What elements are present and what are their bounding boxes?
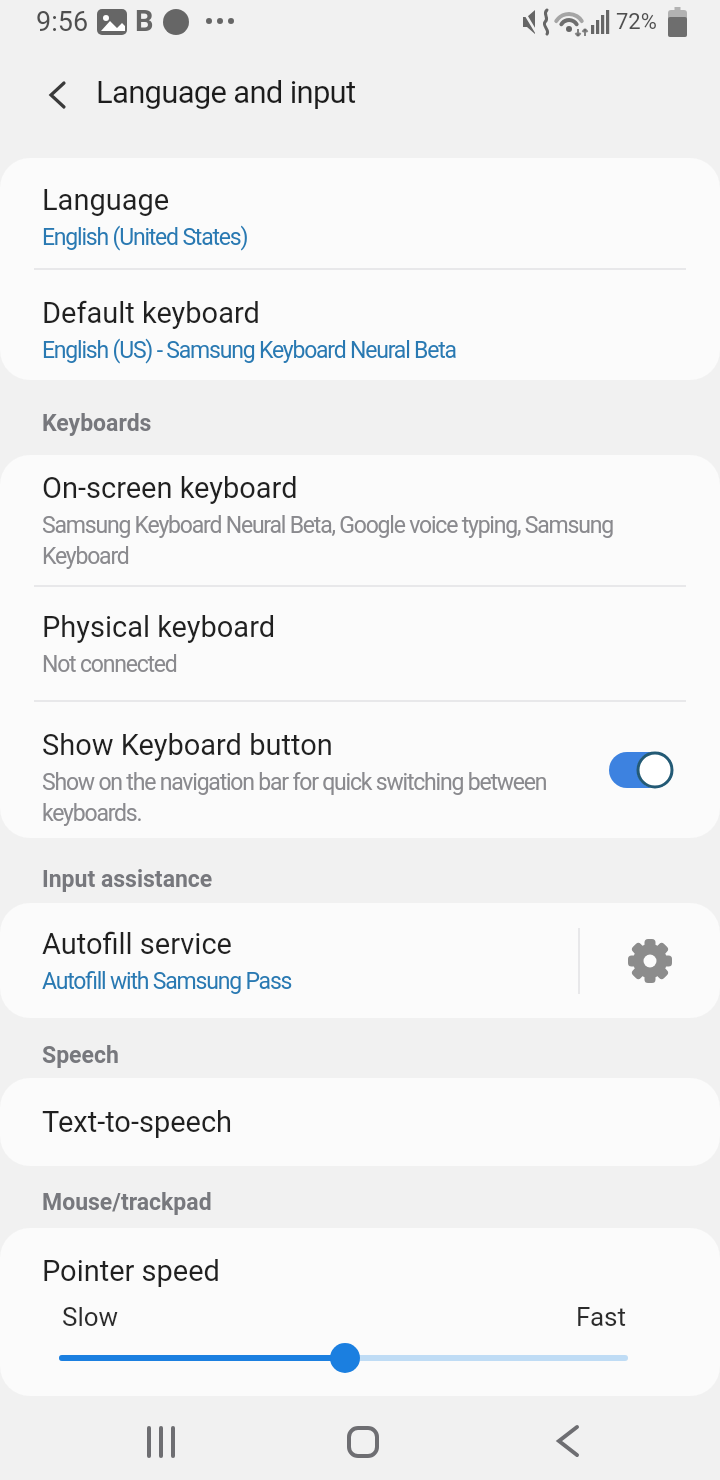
staticText: Language and input	[96, 74, 356, 110]
staticText: Input assistance	[42, 866, 213, 893]
staticText: Pointer speed	[42, 1254, 220, 1288]
staticText: 9:56	[36, 6, 89, 38]
staticText: Slow	[62, 1302, 119, 1332]
staticText: Language	[42, 183, 170, 217]
button[interactable]	[45, 82, 71, 108]
button[interactable]: Show Keyboard button	[0, 702, 720, 838]
staticText: Fast	[576, 1302, 627, 1332]
button[interactable]	[609, 752, 673, 788]
button[interactable]: Default keyboard	[0, 270, 720, 380]
button[interactable]: Text-to-speech	[0, 1078, 720, 1166]
button[interactable]: Physical keyboard	[0, 587, 720, 700]
staticText: Autofill service	[42, 927, 232, 961]
staticText: English (US) - Samsung Keyboard Neural B…	[42, 337, 692, 364]
staticText: English (United States)	[42, 224, 692, 251]
staticText: Mouse/trackpad	[42, 1189, 212, 1216]
staticText: B	[135, 4, 154, 38]
staticText: Physical keyboard	[42, 610, 276, 644]
button[interactable]: Language	[0, 158, 720, 268]
button[interactable]: Autofill service	[0, 903, 720, 1018]
staticText: Not connected	[42, 651, 692, 678]
staticText: 72%	[616, 9, 657, 35]
staticText: On-screen keyboard	[42, 471, 298, 505]
staticText: Samsung Keyboard Neural Beta, Google voi…	[42, 512, 670, 569]
staticText: Text-to-speech	[42, 1105, 233, 1139]
staticText: Speech	[42, 1042, 119, 1069]
staticText: Keyboards	[42, 410, 152, 437]
button[interactable]	[628, 939, 672, 983]
staticText: Show on the navigation bar for quick swi…	[42, 769, 610, 826]
staticText: Default keyboard	[42, 296, 260, 330]
staticText: Show Keyboard button	[42, 728, 333, 762]
button[interactable]: On-screen keyboard	[0, 455, 720, 585]
button[interactable]	[554, 1426, 582, 1456]
staticText: Autofill with Samsung Pass	[42, 968, 692, 995]
button[interactable]	[347, 1426, 379, 1458]
button[interactable]	[146, 1427, 176, 1457]
